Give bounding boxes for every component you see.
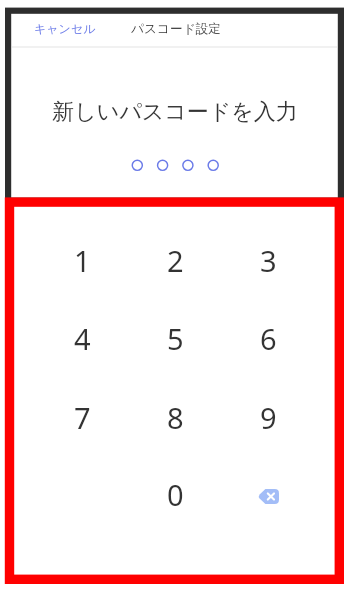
button[interactable]: 6 (232, 309, 304, 367)
staticText: 0 (167, 475, 184, 514)
button[interactable]: キャンセル (32, 17, 98, 40)
button[interactable]: 4 (46, 309, 118, 367)
staticText: 6 (260, 319, 277, 358)
button[interactable]: 2 (139, 231, 211, 289)
staticText: 8 (167, 398, 184, 437)
button[interactable]: Delete (232, 465, 304, 523)
button[interactable]: 1 (46, 231, 118, 289)
staticText: 4 (74, 319, 91, 358)
button[interactable]: 0 (139, 465, 211, 523)
staticText: キャンセル (34, 21, 96, 36)
button[interactable]: 9 (232, 388, 304, 446)
button[interactable]: 8 (139, 388, 211, 446)
staticText: 9 (260, 398, 277, 437)
staticText: 7 (74, 398, 91, 437)
button[interactable]: 3 (232, 231, 304, 289)
staticText: 新しいパスコードを入力 (0, 98, 350, 126)
staticText: パスコード設定 (131, 21, 222, 37)
staticText: 3 (260, 241, 277, 280)
staticText: 1 (74, 241, 91, 280)
button[interactable]: 7 (46, 388, 118, 446)
staticText: 2 (167, 241, 184, 280)
staticText: 5 (167, 319, 184, 358)
button[interactable]: 5 (139, 309, 211, 367)
